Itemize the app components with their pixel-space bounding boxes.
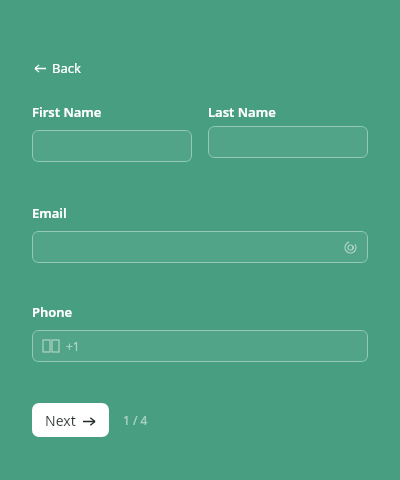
button[interactable]: Back [32,57,83,79]
button[interactable] [32,231,368,263]
staticText: Back [52,59,81,77]
button[interactable] [208,126,368,158]
staticText: +1 [66,338,80,354]
button[interactable]: Next [32,403,109,437]
staticText: Email [32,204,67,222]
staticText: First Name [32,103,102,121]
button[interactable]: +1 [32,330,368,362]
staticText: Last Name [208,103,276,121]
button[interactable] [32,130,192,162]
staticText: Phone [32,303,73,321]
staticText: 1 / 4 [123,412,148,428]
staticText: Next [45,411,76,430]
